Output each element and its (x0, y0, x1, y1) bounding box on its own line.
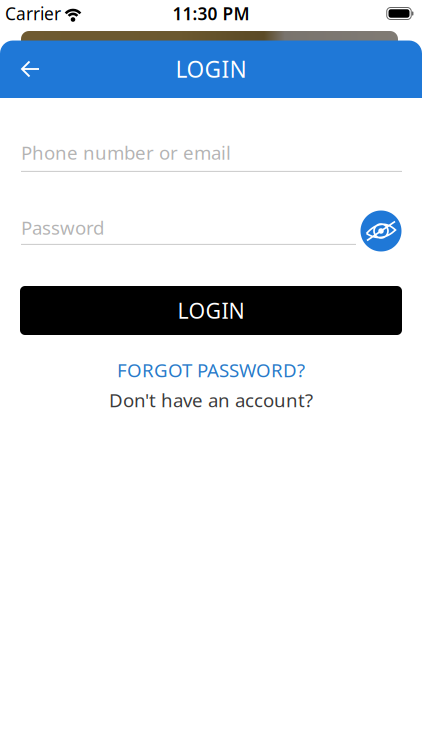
button[interactable]: Show password (360, 210, 401, 251)
button[interactable]: Password (21, 217, 356, 243)
staticText: 11:30 PM (172, 2, 249, 25)
button[interactable]: LOGIN (20, 286, 402, 335)
staticText: FORGOT PASSWORD? (117, 358, 305, 382)
button[interactable]: Back (14, 54, 48, 84)
staticText: Carrier (5, 2, 61, 25)
staticText: Phone number or email (21, 140, 231, 165)
staticText: Password (21, 215, 104, 240)
staticText: Don't have an account? (109, 388, 313, 412)
button[interactable]: Don't have an account? (109, 388, 313, 412)
button[interactable]: Phone number or email (21, 143, 402, 169)
staticText: LOGIN (177, 296, 244, 325)
button[interactable]: FORGOT PASSWORD? (117, 358, 305, 382)
staticText: LOGIN (175, 54, 246, 84)
